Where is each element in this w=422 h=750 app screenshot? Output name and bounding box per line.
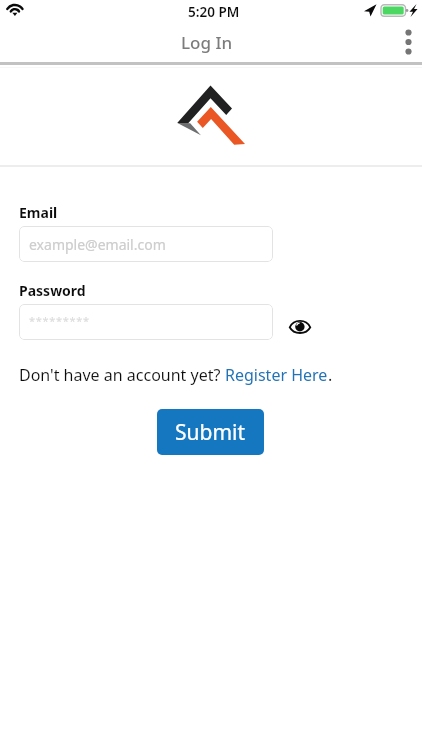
staticText: Submit bbox=[175, 418, 246, 447]
button[interactable]: Register Here bbox=[225, 364, 328, 386]
button[interactable]: Submit bbox=[157, 409, 264, 455]
button[interactable]: ********* bbox=[19, 304, 273, 340]
staticText: Email bbox=[19, 203, 58, 222]
button[interactable]: More options bbox=[392, 24, 422, 57]
staticText: Log In bbox=[181, 31, 233, 54]
staticText: . bbox=[328, 364, 333, 386]
staticText: ********* bbox=[29, 313, 90, 328]
button[interactable]: Show password bbox=[286, 313, 313, 340]
staticText: example@email.com bbox=[29, 235, 166, 254]
staticText: 5:20 PM bbox=[188, 3, 240, 21]
button[interactable]: example@email.com bbox=[19, 226, 273, 262]
staticText: Don't have an account yet? bbox=[19, 364, 225, 386]
staticText: Password bbox=[19, 281, 86, 300]
